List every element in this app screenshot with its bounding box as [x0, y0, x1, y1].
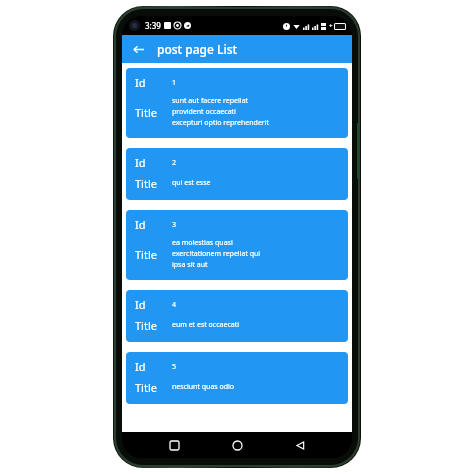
- staticText: Id: [135, 359, 146, 374]
- button[interactable]: Recents: [163, 434, 185, 456]
- staticText: 3: [172, 220, 177, 230]
- button[interactable]: Back: [127, 38, 149, 60]
- staticText: post page List: [157, 41, 238, 57]
- staticText: eum et est occaecati: [172, 320, 240, 330]
- button[interactable]: Id: [126, 148, 348, 200]
- staticText: ipsa sit aut: [172, 260, 208, 270]
- button[interactable]: Id: [126, 210, 348, 280]
- staticText: 3:39: [145, 20, 161, 31]
- staticText: exercitationem repellat qui: [172, 249, 261, 259]
- staticText: Title: [135, 105, 157, 120]
- staticText: 4: [172, 300, 177, 310]
- staticText: Id: [135, 297, 146, 312]
- staticText: nesciunt quas odio: [172, 382, 235, 392]
- button[interactable]: Back: [289, 434, 311, 456]
- button[interactable]: Id: [126, 352, 348, 404]
- staticText: sunt aut facere repellat: [172, 96, 249, 106]
- staticText: provident occaecati: [172, 107, 236, 117]
- staticText: Title: [135, 247, 157, 262]
- staticText: 2: [172, 158, 177, 168]
- staticText: Id: [135, 155, 146, 170]
- staticText: Id: [135, 217, 146, 232]
- button[interactable]: Id: [126, 68, 348, 138]
- staticText: ea molestias quasi: [172, 238, 233, 248]
- staticText: 1: [172, 78, 177, 88]
- staticText: Title: [135, 176, 157, 191]
- staticText: +: [329, 22, 333, 30]
- staticText: excepturi optio reprehenderit: [172, 118, 270, 128]
- staticText: Title: [135, 318, 157, 333]
- staticText: Title: [135, 380, 157, 395]
- staticText: 5: [172, 362, 177, 372]
- button[interactable]: Home: [226, 434, 248, 456]
- staticText: Id: [135, 75, 146, 90]
- button[interactable]: Id: [126, 290, 348, 342]
- staticText: qui est esse: [172, 178, 211, 188]
